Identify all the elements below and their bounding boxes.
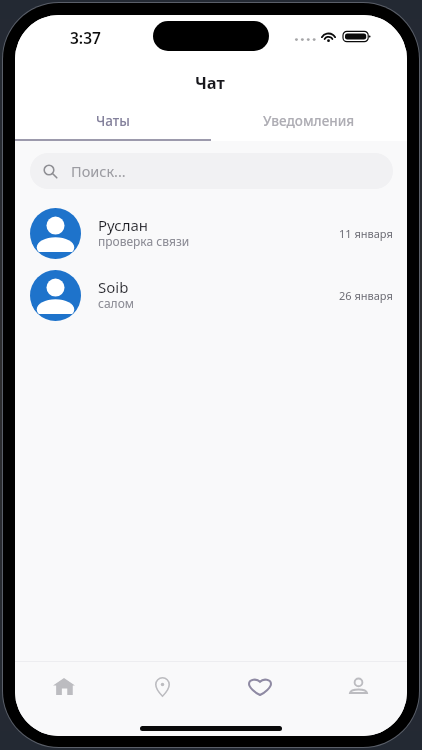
staticText: Уведомления (263, 112, 355, 130)
button[interactable]: Home (15, 662, 113, 711)
button[interactable]: Soib (15, 264, 407, 326)
staticText: 11 января (339, 226, 393, 241)
button[interactable]: Places (113, 662, 211, 711)
button[interactable]: Руслан (15, 202, 407, 264)
button[interactable]: Profile (309, 662, 407, 711)
staticText: салом (98, 295, 134, 311)
button[interactable]: Уведомления (211, 107, 407, 135)
staticText: Soib (98, 277, 129, 297)
staticText: 26 января (339, 288, 393, 303)
button[interactable]: Поиск... (30, 153, 393, 189)
staticText: проверка связи (98, 233, 190, 249)
staticText: 3:37 (70, 27, 101, 48)
staticText: Поиск... (71, 161, 126, 181)
staticText: Чаты (96, 112, 130, 130)
staticText: Чат (195, 71, 225, 93)
button[interactable]: Favorites (211, 662, 309, 711)
staticText: Руслан (98, 215, 149, 235)
button[interactable]: Чаты (15, 107, 211, 135)
